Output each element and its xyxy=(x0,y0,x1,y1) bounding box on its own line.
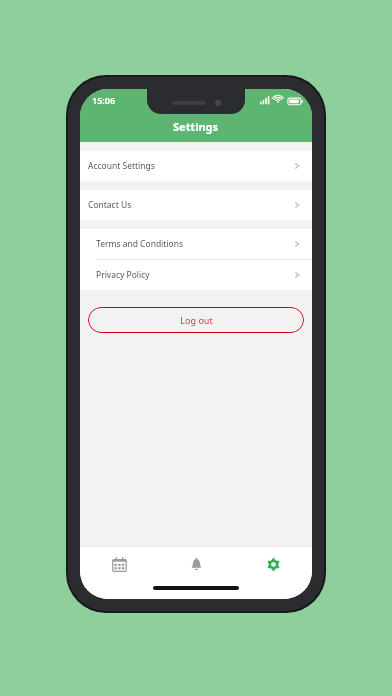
staticText: Settings xyxy=(173,119,219,134)
staticText: Account Settings xyxy=(88,160,155,172)
staticText: 15:06 xyxy=(92,94,116,106)
button[interactable]: Calendar xyxy=(80,547,158,581)
staticText: Contact Us xyxy=(88,199,132,211)
button[interactable]: Contact Us xyxy=(80,190,312,220)
staticText: Privacy Policy xyxy=(96,269,150,281)
button[interactable]: Settings xyxy=(235,547,312,581)
button[interactable]: Notifications xyxy=(158,547,235,581)
staticText: Log out xyxy=(180,314,213,326)
staticText: Terms and Conditions xyxy=(96,238,184,250)
button[interactable]: Privacy Policy xyxy=(80,260,312,290)
button[interactable]: Terms and Conditions xyxy=(80,229,312,259)
button[interactable]: Account Settings xyxy=(80,151,312,181)
button[interactable]: Log out xyxy=(88,307,304,333)
